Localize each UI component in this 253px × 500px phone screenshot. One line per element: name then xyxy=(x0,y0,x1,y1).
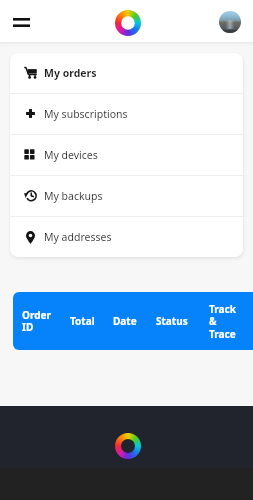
button[interactable]: My addresses xyxy=(10,217,243,257)
staticText: My subscriptions xyxy=(44,107,128,121)
staticText: My backups xyxy=(44,189,103,203)
button[interactable]: My orders xyxy=(10,53,243,93)
button[interactable]: Menu xyxy=(7,8,36,37)
staticText: Track & Trace xyxy=(209,302,236,341)
button[interactable]: My backups xyxy=(10,176,243,216)
button[interactable]: Profile xyxy=(219,11,241,33)
staticText: Total xyxy=(70,314,95,328)
staticText: Status xyxy=(156,314,188,328)
button[interactable]: My subscriptions xyxy=(10,94,243,134)
staticText: Order ID xyxy=(22,308,51,334)
button[interactable]: My devices xyxy=(10,135,243,175)
staticText: Date xyxy=(113,314,137,328)
staticText: My orders xyxy=(44,66,97,80)
staticText: My addresses xyxy=(44,230,112,244)
staticText: My devices xyxy=(44,148,98,162)
